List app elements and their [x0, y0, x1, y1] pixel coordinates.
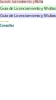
staticText: Guia de Licenciamiento y Multas [0, 5, 56, 11]
staticText: Consultar [0, 24, 14, 27]
staticText: Guia de Licenciamiento y Multas [0, 0, 43, 3]
staticText: Inicio / Tramites [0, 20, 9, 22]
staticText: Guía de Licenciamiento y Multas [0, 13, 56, 18]
